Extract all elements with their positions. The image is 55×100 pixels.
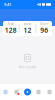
staticText: Active (23, 22, 31, 26)
staticText: No results (18, 64, 36, 69)
staticText: 96 (40, 26, 48, 35)
button[interactable]: Total (3, 21, 19, 36)
staticText: 12 (23, 26, 31, 35)
staticText: Total (8, 22, 14, 26)
button[interactable]: Browse (33, 84, 44, 100)
button[interactable]: Profile (44, 84, 55, 100)
staticText: Done (40, 22, 48, 26)
button[interactable]: Notifications (11, 84, 22, 100)
button[interactable]: Home (0, 84, 11, 100)
button[interactable]: Account (22, 84, 33, 100)
staticText: 128 (5, 26, 17, 35)
button[interactable]: Active (20, 21, 35, 36)
staticText: 9:41 (4, 2, 11, 7)
button[interactable]: Done (36, 21, 52, 36)
